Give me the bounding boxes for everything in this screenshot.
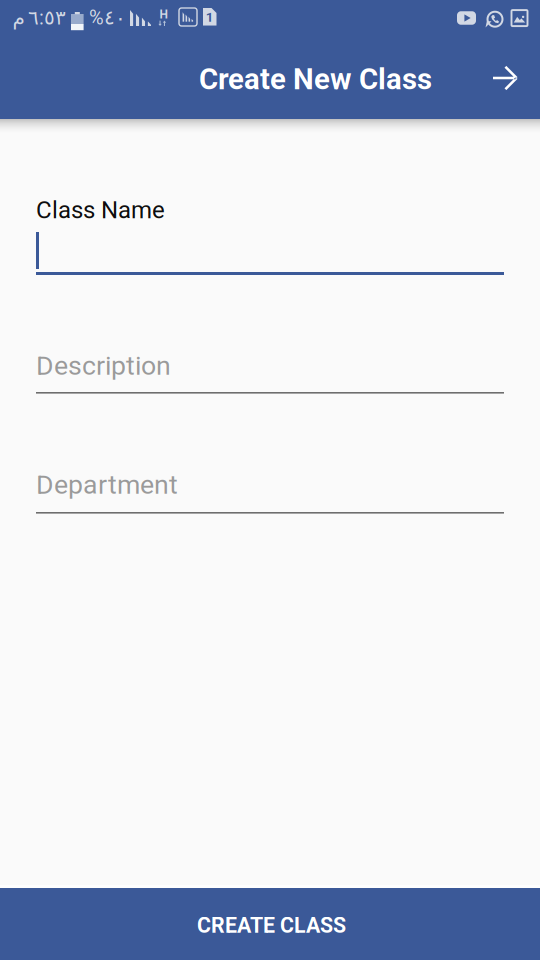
staticText: %٤٠ bbox=[89, 6, 126, 29]
staticText: CREATE CLASS bbox=[197, 913, 346, 938]
staticText: 1 bbox=[206, 9, 214, 25]
button[interactable]: Next bbox=[477, 50, 533, 106]
button[interactable]: Description bbox=[36, 342, 504, 404]
button[interactable]: CREATE CLASS bbox=[0, 888, 540, 960]
staticText: Department bbox=[36, 469, 178, 500]
button[interactable]: Department bbox=[36, 462, 504, 524]
staticText: H bbox=[160, 7, 168, 22]
staticText: Description bbox=[36, 350, 171, 381]
button[interactable]: Class Name bbox=[36, 188, 504, 284]
staticText: م bbox=[12, 6, 24, 29]
staticText: ٦:٥٣ bbox=[28, 6, 66, 29]
staticText: Class Name bbox=[36, 196, 165, 224]
staticText: Create New Class bbox=[199, 62, 432, 96]
